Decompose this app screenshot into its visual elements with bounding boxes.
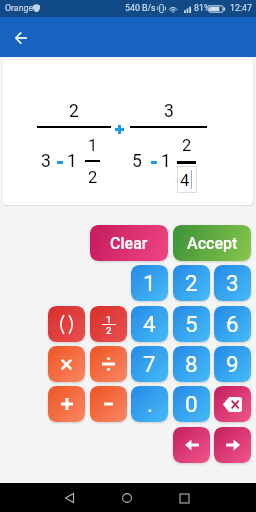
button[interactable]: Multiply <box>48 346 85 382</box>
staticText: 0 <box>185 391 198 417</box>
button[interactable]: Clear <box>90 225 168 261</box>
staticText: 5 <box>185 311 198 337</box>
staticText: 1 <box>161 151 171 172</box>
staticText: 3 <box>226 270 239 296</box>
staticText: Clear <box>110 234 148 253</box>
staticText: 8 <box>185 351 198 377</box>
staticText: 2 <box>185 270 198 296</box>
button[interactable]: Accept <box>173 225 251 261</box>
staticText: 2 <box>106 325 112 336</box>
button[interactable]: Parentheses <box>48 306 85 342</box>
button[interactable]: Divide <box>90 346 127 382</box>
staticText: 3 <box>41 151 51 172</box>
button[interactable]: One half <box>90 306 127 342</box>
staticText: 4 <box>180 171 190 190</box>
button[interactable]: Backspace <box>214 386 251 422</box>
button[interactable]: Recent apps <box>172 486 196 510</box>
staticText: 1 <box>106 314 112 325</box>
button[interactable]: 5 <box>173 306 210 342</box>
staticText: Orange <box>5 3 34 13</box>
button[interactable]: Back <box>57 486 81 510</box>
button[interactable]: Navigate up <box>6 23 35 52</box>
button[interactable]: Minus <box>90 386 127 422</box>
staticText: 4 <box>143 311 156 337</box>
staticText: 7 <box>143 351 156 377</box>
button[interactable]: 4 <box>131 306 168 342</box>
staticText: . <box>147 391 153 417</box>
button[interactable]: 2 <box>173 265 210 301</box>
staticText: 540 B/s <box>125 3 156 13</box>
button[interactable]: 3 <box>214 265 251 301</box>
button[interactable]: . <box>131 386 168 422</box>
button[interactable]: Plus <box>48 386 85 422</box>
staticText: 5 <box>132 151 142 172</box>
staticText: 1 <box>88 136 98 155</box>
button[interactable]: 8 <box>173 346 210 382</box>
button[interactable]: Home <box>115 486 139 510</box>
button[interactable]: 1 <box>131 265 168 301</box>
button[interactable]: Move right <box>214 427 251 463</box>
button[interactable]: 7 <box>131 346 168 382</box>
button[interactable]: 9 <box>214 346 251 382</box>
staticText: 9 <box>226 351 239 377</box>
staticText: 81% <box>194 3 211 13</box>
staticText: 2 <box>69 101 79 122</box>
button[interactable]: 0 <box>173 386 210 422</box>
staticText: 12:47 <box>230 3 252 13</box>
staticText: 1 <box>143 270 156 296</box>
button[interactable]: Move left <box>173 427 210 463</box>
staticText: 2 <box>88 168 98 187</box>
staticText: 2 <box>182 136 192 155</box>
staticText: Accept <box>187 234 238 253</box>
button[interactable]: 6 <box>214 306 251 342</box>
staticText: 3 <box>164 101 174 122</box>
staticText: 1 <box>67 151 77 172</box>
staticText: 6 <box>226 311 239 337</box>
